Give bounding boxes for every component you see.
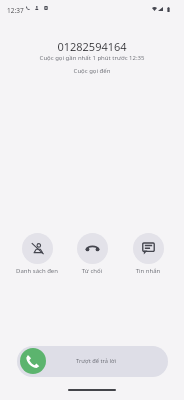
staticText: Danh sách đen (11, 267, 63, 274)
staticText: Từ chối (75, 267, 109, 274)
button[interactable]: Danh sách đen (11, 233, 63, 274)
button[interactable]: Tin nhắn (129, 233, 167, 274)
staticText: Tin nhắn (129, 267, 167, 274)
staticText: 01282594164 (0, 39, 184, 54)
staticText: 12:37 (7, 6, 24, 15)
staticText: Trượt để trả lời (76, 357, 116, 365)
button[interactable]: Từ chối (75, 233, 109, 274)
button[interactable]: Trượt để trả lời (17, 346, 168, 377)
button[interactable]: Answer call (20, 348, 46, 374)
staticText: Cuộc gọi gần nhất 1 phút trước 12:35 (0, 54, 184, 62)
staticText: Cuộc gọi đến (0, 67, 184, 75)
